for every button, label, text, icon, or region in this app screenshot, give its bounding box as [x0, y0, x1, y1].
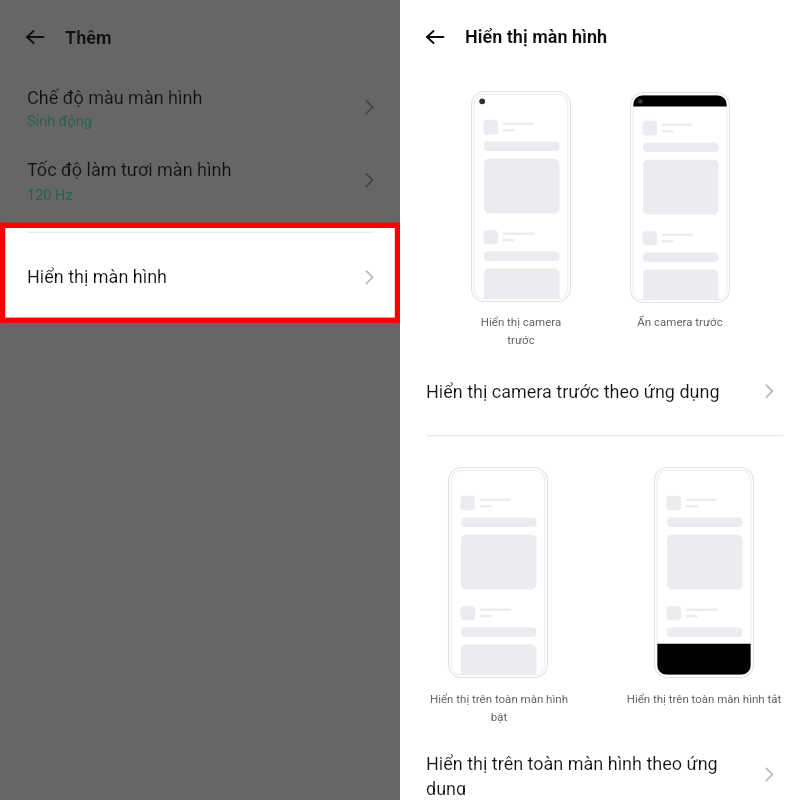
- staticText: Hiển thị trên toàn màn hình tắt: [584, 692, 800, 800]
- staticText: Hiển thị camera trước theo ứng dụng: [426, 381, 720, 402]
- button[interactable]: Ẩn camera trước: [630, 92, 730, 303]
- staticText: dụng: [426, 778, 467, 795]
- button[interactable]: Back: [16, 17, 56, 57]
- staticText: Tốc độ làm tươi màn hình: [27, 159, 232, 180]
- button[interactable]: Tốc độ làm tươi màn hình: [0, 150, 400, 222]
- staticText: Hiển thị trên toàn màn hình theo ứng: [426, 753, 718, 774]
- staticText: Sinh động: [27, 113, 92, 130]
- button[interactable]: Hiển thị camera trước: [471, 91, 571, 302]
- button[interactable]: Chế độ màu màn hình: [0, 78, 400, 150]
- button[interactable]: Hiển thị camera trước theo ứng dụng: [400, 360, 800, 428]
- button[interactable]: Hiển thị trên toàn màn hình bật: [448, 467, 548, 678]
- staticText: Thêm: [65, 27, 112, 48]
- staticText: Hiển thị màn hình: [465, 26, 608, 47]
- staticText: Hiển thị trên toàn màn hình: [379, 692, 619, 800]
- staticText: Hiển thị camera: [401, 315, 641, 800]
- staticText: Hiển thị màn hình: [27, 266, 168, 287]
- staticText: bật: [379, 710, 619, 800]
- staticText: 120 Hz: [27, 187, 73, 204]
- staticText: trước: [401, 333, 641, 800]
- staticText: Chế độ màu màn hình: [27, 87, 203, 108]
- button[interactable]: Hiển thị màn hình: [0, 228, 400, 319]
- button[interactable]: Hiển thị trên toàn màn hình tắt: [654, 467, 754, 678]
- button[interactable]: Back: [416, 17, 456, 57]
- staticText: Ẩn camera trước: [560, 315, 800, 800]
- button[interactable]: Hiển thị trên toàn màn hình theo ứng: [400, 745, 800, 795]
